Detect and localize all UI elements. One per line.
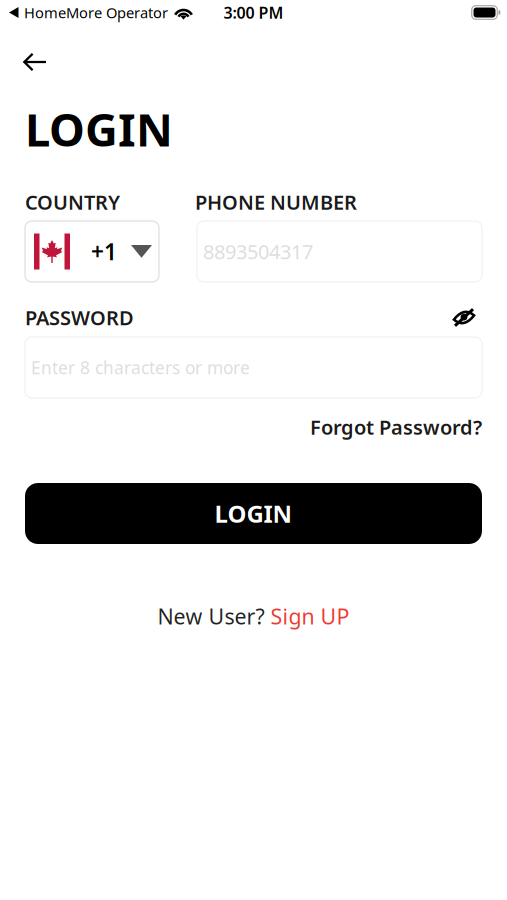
staticText: New User? — [157, 602, 270, 630]
staticText: PHONE NUMBER — [195, 189, 357, 215]
staticText: PASSWORD — [25, 304, 134, 331]
staticText: Enter 8 characters or more — [31, 356, 250, 379]
staticText: Sign UP — [270, 602, 349, 630]
staticText: 8893504317 — [203, 238, 313, 265]
staticText: COUNTRY — [25, 189, 120, 215]
button[interactable]: Forgot Password? — [310, 414, 482, 440]
staticText: 3:00 PM — [223, 2, 283, 23]
button[interactable]: Show password — [453, 308, 482, 327]
button[interactable]: Back — [13, 40, 57, 84]
staticText: LOGIN — [25, 99, 173, 159]
staticText: +1 — [91, 236, 117, 266]
button[interactable]: Select country code — [25, 221, 159, 282]
button[interactable]: LOGIN — [25, 483, 482, 544]
staticText: LOGIN — [214, 498, 292, 529]
staticText: Forgot Password? — [310, 414, 482, 440]
button[interactable]: Sign UP — [270, 602, 349, 630]
staticText: HomeMore Operator — [24, 3, 168, 22]
